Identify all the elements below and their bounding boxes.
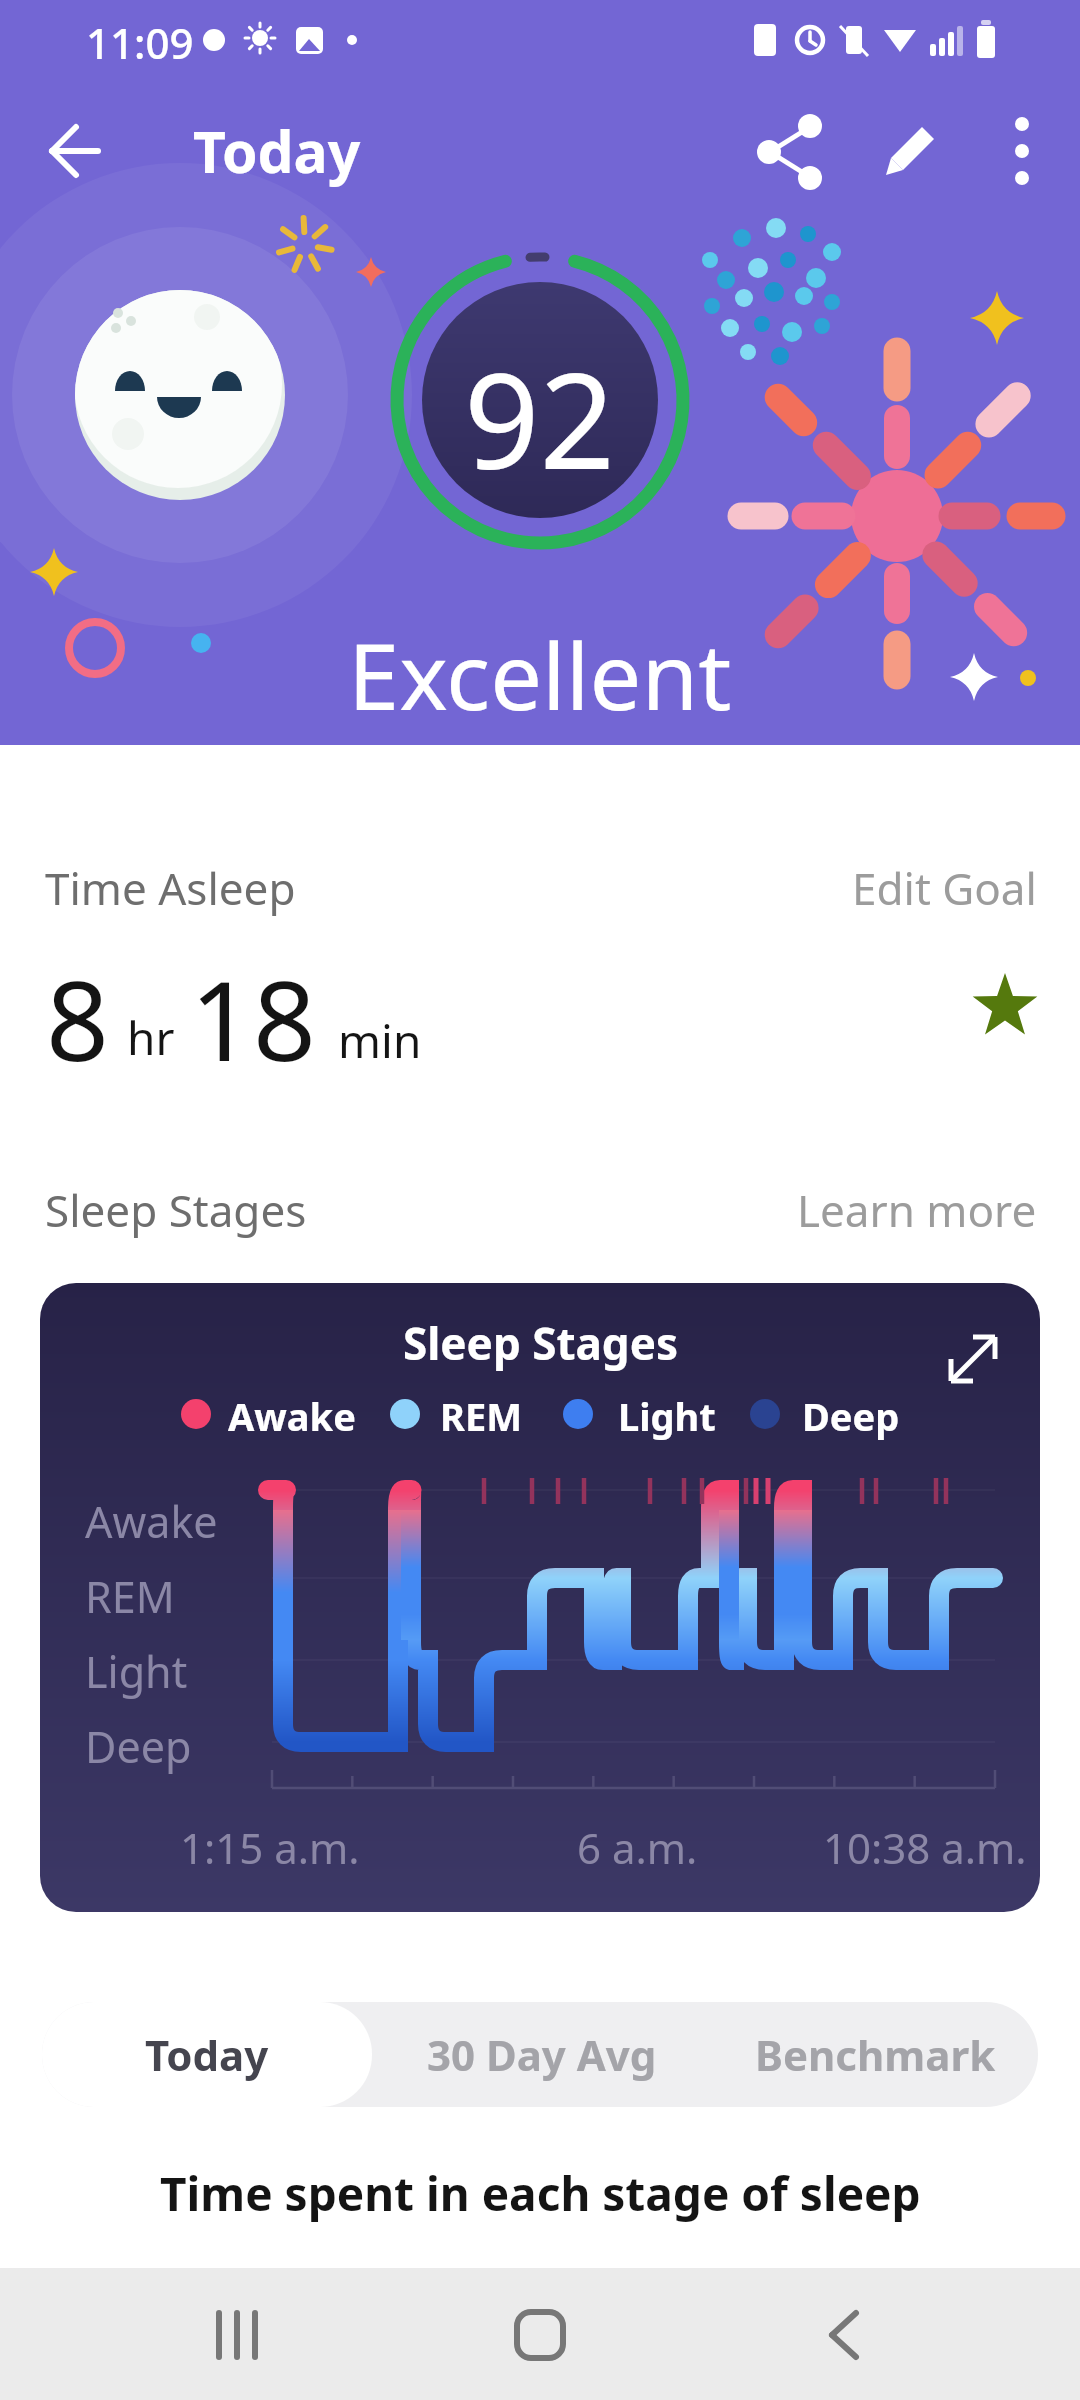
button[interactable]	[150, 2290, 330, 2380]
staticText: Time Asleep	[45, 858, 296, 918]
staticText: 8	[46, 943, 109, 1093]
button[interactable]: Learn more	[737, 1178, 1037, 1242]
staticText: 30 Day Avg	[427, 2026, 657, 2083]
staticText: Sleep Stages	[403, 1313, 678, 1373]
staticText: hr	[127, 1006, 175, 1066]
staticText: REM	[85, 1567, 175, 1625]
staticText: Awake	[228, 1390, 356, 1440]
staticText: Sleep Stages	[45, 1180, 307, 1240]
button[interactable]: Today	[42, 2002, 372, 2107]
staticText: 92	[464, 328, 616, 482]
staticText: Time spent in each stage of sleep	[160, 2162, 921, 2225]
staticText: 1:15 a.m.	[180, 1819, 360, 1876]
staticText: Deep	[802, 1390, 900, 1440]
button[interactable]: 30 Day Avg	[372, 2002, 712, 2107]
staticText: Light	[85, 1642, 188, 1700]
button[interactable]	[928, 1314, 1018, 1404]
staticText: 6 a.m.	[577, 1819, 698, 1876]
staticText: REM	[440, 1390, 523, 1440]
staticText: 18	[190, 943, 316, 1093]
staticText: min	[338, 1009, 422, 1069]
staticText: Today	[145, 2026, 269, 2083]
staticText: Light	[618, 1390, 716, 1440]
staticText: Learn more	[797, 1180, 1037, 1240]
staticText: Edit Goal	[852, 858, 1037, 918]
button[interactable]: Benchmark	[712, 2002, 1038, 2107]
button[interactable]	[865, 106, 955, 196]
staticText: Excellent	[348, 612, 732, 728]
button[interactable]	[750, 2290, 930, 2380]
staticText: Awake	[85, 1492, 218, 1550]
button[interactable]: Edit Goal	[737, 856, 1037, 920]
button[interactable]	[745, 106, 835, 196]
staticText: Benchmark	[755, 2026, 996, 2083]
staticText: 11:09	[86, 14, 194, 66]
staticText: 10:38 a.m.	[823, 1819, 1027, 1876]
staticText: Today	[193, 112, 361, 190]
staticText: Deep	[85, 1717, 192, 1775]
button[interactable]	[977, 106, 1067, 196]
button[interactable]	[450, 2290, 630, 2380]
button[interactable]	[30, 106, 120, 196]
